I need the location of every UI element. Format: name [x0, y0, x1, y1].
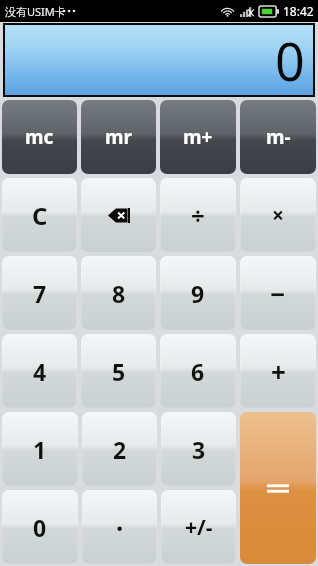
- staticText: 8: [112, 278, 126, 309]
- button[interactable]: −: [240, 256, 316, 330]
- staticText: +/-: [185, 513, 213, 542]
- staticText: ×: [272, 201, 285, 230]
- staticText: m+: [183, 124, 213, 150]
- staticText: −: [270, 276, 286, 311]
- staticText: C: [32, 199, 48, 232]
- staticText: ÷: [191, 199, 205, 232]
- button[interactable]: +/-: [161, 490, 236, 564]
- button[interactable]: 2: [82, 412, 157, 486]
- staticText: 18:42: [283, 3, 314, 19]
- button[interactable]: 5: [81, 334, 156, 408]
- staticText: 没有USIM卡: [5, 4, 66, 19]
- button[interactable]: 3: [161, 412, 236, 486]
- staticText: 0: [275, 25, 305, 95]
- staticText: m-: [266, 124, 291, 150]
- button[interactable]: m-: [240, 100, 316, 174]
- button[interactable]: ×: [240, 178, 316, 252]
- staticText: 3: [192, 434, 206, 465]
- button[interactable]: +: [240, 334, 316, 408]
- staticText: 0: [33, 512, 47, 543]
- button[interactable]: ÷: [160, 178, 236, 252]
- staticText: 6: [191, 356, 205, 387]
- staticText: mr: [105, 124, 133, 150]
- button[interactable]: 9: [160, 256, 236, 330]
- button[interactable]: 7: [2, 256, 77, 330]
- staticText: mc: [25, 124, 54, 150]
- button[interactable]: 6: [160, 334, 236, 408]
- staticText: 4: [33, 356, 47, 387]
- button[interactable]: Backspace: [81, 178, 156, 252]
- staticText: 1: [33, 434, 47, 465]
- button[interactable]: mc: [2, 100, 77, 174]
- button[interactable]: C: [2, 178, 77, 252]
- button[interactable]: mr: [81, 100, 156, 174]
- button[interactable]: 4: [2, 334, 77, 408]
- button[interactable]: m+: [160, 100, 236, 174]
- button[interactable]: 8: [81, 256, 156, 330]
- staticText: 2: [113, 434, 127, 465]
- button[interactable]: Equals: [240, 412, 316, 564]
- staticText: 9: [191, 278, 205, 309]
- button[interactable]: ·: [82, 490, 157, 564]
- staticText: 7: [33, 278, 47, 309]
- button[interactable]: 1: [2, 412, 78, 486]
- button[interactable]: 0: [2, 490, 78, 564]
- staticText: +: [271, 354, 286, 389]
- staticText: 5: [112, 356, 126, 387]
- staticText: ·: [116, 510, 124, 545]
